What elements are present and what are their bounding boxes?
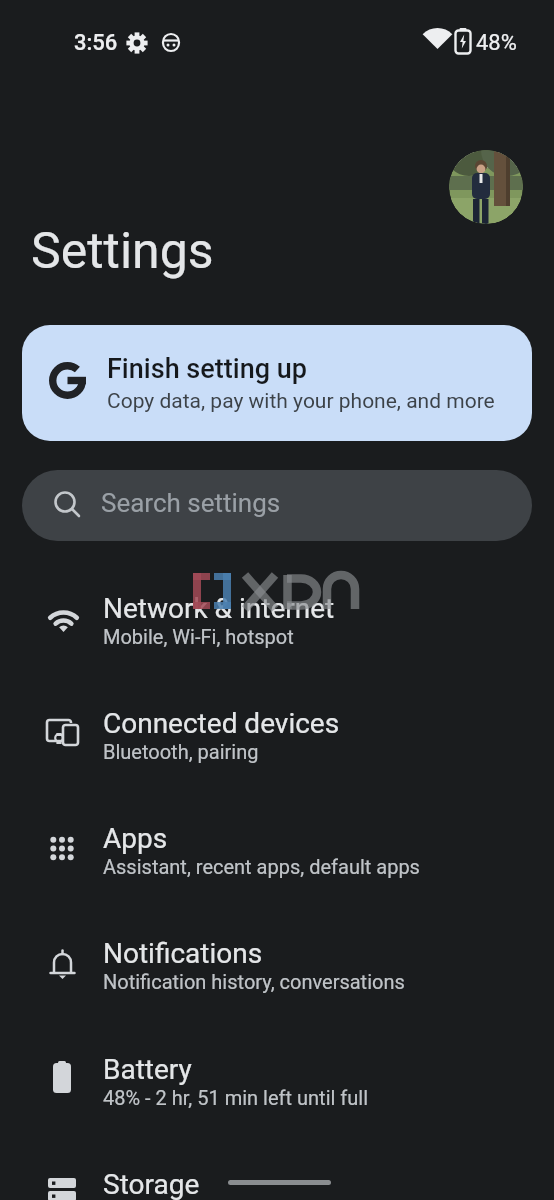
button[interactable]: Battery <box>0 1031 554 1131</box>
button[interactable]: Finish setting up <box>22 325 532 441</box>
staticText: Connected devices <box>103 707 340 740</box>
staticText: Apps <box>103 822 168 855</box>
staticText: Storage <box>103 1168 200 1200</box>
staticText: Assistant, recent apps, default apps <box>103 855 420 878</box>
staticText: Bluetooth, pairing <box>103 740 259 763</box>
button[interactable] <box>449 150 523 224</box>
staticText: Search settings <box>101 488 281 518</box>
button[interactable]: Search settings <box>22 470 532 541</box>
staticText: Settings <box>31 222 214 281</box>
button[interactable]: Storage <box>0 1146 554 1200</box>
staticText: 48% - 2 hr, 51 min left until full <box>103 1086 369 1109</box>
staticText: 48% <box>476 30 517 56</box>
staticText: Network & internet <box>103 592 335 625</box>
staticText: Copy data, pay with your phone, and more <box>107 389 495 414</box>
staticText: Notifications <box>103 937 263 970</box>
staticText: Mobile, Wi-Fi, hotspot <box>103 625 294 648</box>
button[interactable]: Notifications <box>0 915 554 1015</box>
button[interactable]: Connected devices <box>0 685 554 785</box>
button[interactable]: Apps <box>0 800 554 900</box>
staticText: Notification history, conversations <box>103 970 405 993</box>
staticText: 3:56 <box>74 30 118 56</box>
staticText: Battery <box>103 1053 192 1086</box>
button[interactable]: Network & internet <box>0 570 554 670</box>
staticText: Finish setting up <box>107 353 307 385</box>
